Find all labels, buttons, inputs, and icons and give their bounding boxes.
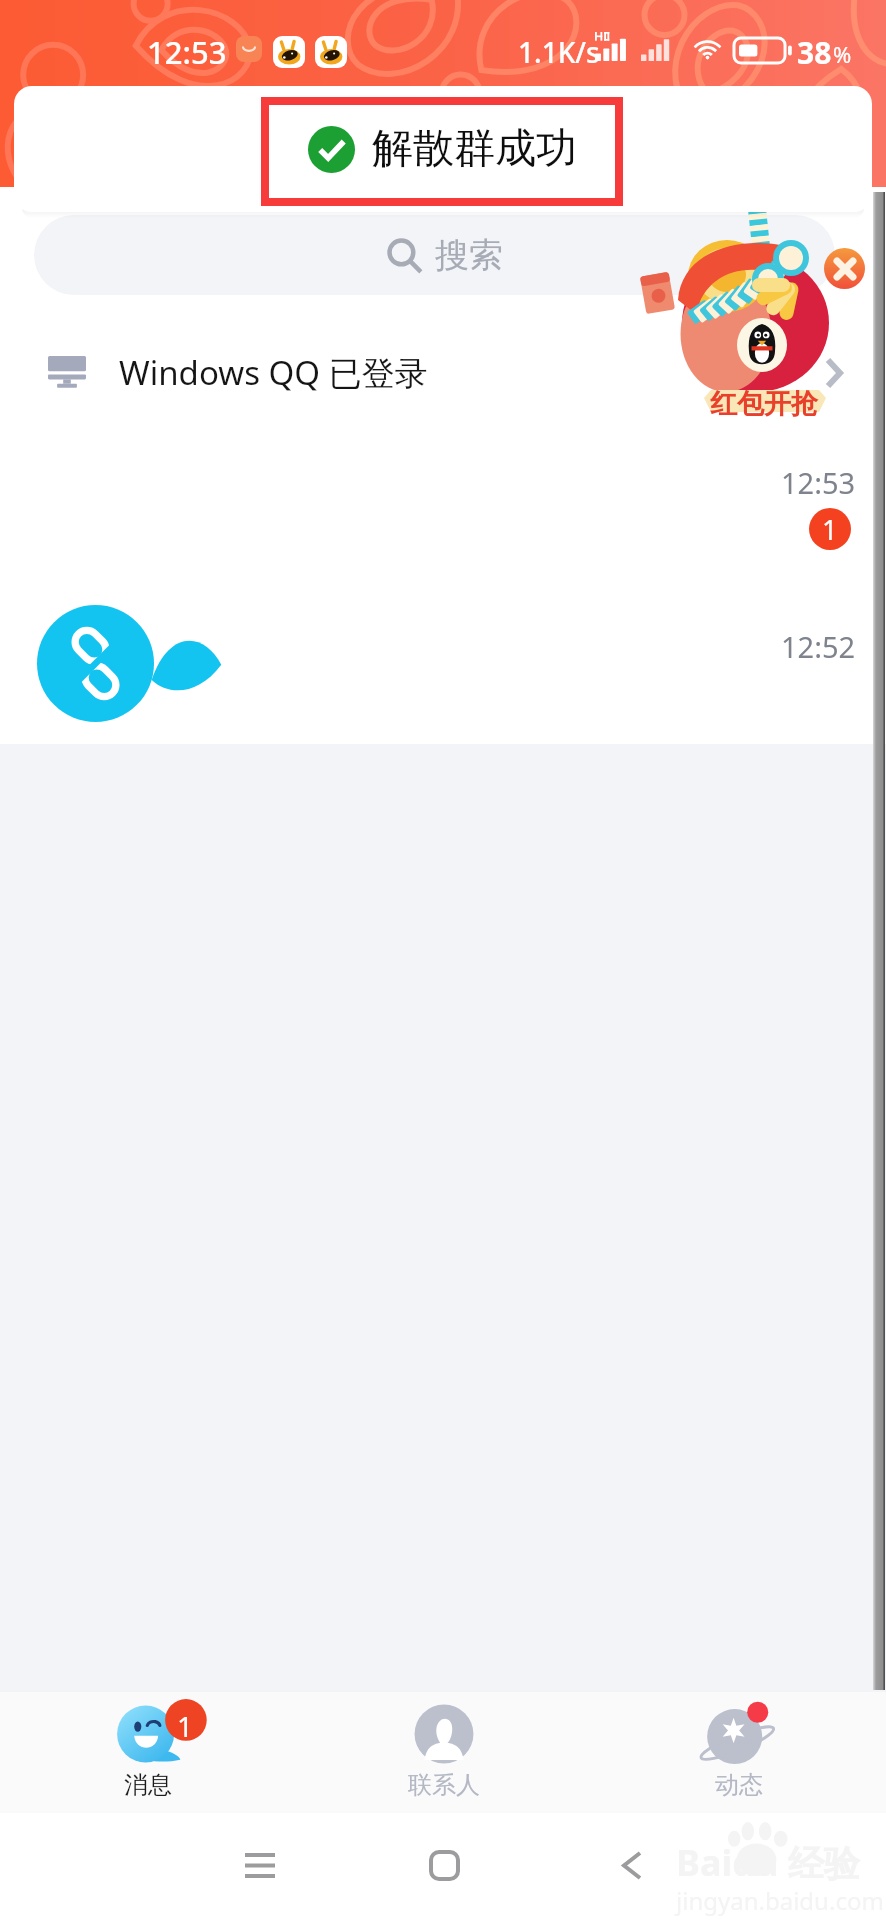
button[interactable]: 联系人 bbox=[296, 1692, 591, 1813]
staticText: 12:53 bbox=[781, 463, 856, 502]
button[interactable]: 12:52 bbox=[0, 599, 886, 744]
staticText: 12:53 bbox=[147, 31, 227, 73]
button[interactable]: Recent apps bbox=[215, 1820, 305, 1910]
staticText: 红包开抢 bbox=[710, 387, 818, 421]
button[interactable]: 动态 bbox=[591, 1692, 886, 1813]
staticText: 1.1K/s bbox=[518, 33, 600, 71]
staticText: jingyan.baidu.com bbox=[676, 1884, 884, 1917]
staticText: 1 bbox=[177, 1707, 194, 1745]
staticText: 动态 bbox=[715, 1770, 763, 1800]
staticText: 解散群成功 bbox=[372, 123, 577, 175]
staticText: 38 bbox=[797, 32, 832, 73]
staticText: % bbox=[833, 39, 852, 69]
button[interactable]: 1 bbox=[0, 1692, 296, 1813]
button[interactable]: 12:53 bbox=[0, 432, 886, 599]
staticText: 12:52 bbox=[781, 627, 856, 666]
button[interactable]: Red packet promotion bbox=[636, 200, 876, 420]
staticText: 1 bbox=[822, 511, 838, 548]
button[interactable]: Back bbox=[587, 1820, 677, 1910]
button[interactable]: 解散群成功 bbox=[14, 86, 872, 212]
staticText: Windows QQ 已登录 bbox=[119, 350, 428, 395]
button[interactable]: Windows QQ 已登录 bbox=[0, 320, 886, 425]
button[interactable]: 搜索 bbox=[34, 215, 835, 295]
staticText: 联系人 bbox=[408, 1770, 480, 1800]
button[interactable]: Close ad bbox=[824, 248, 865, 289]
button[interactable]: Home bbox=[399, 1820, 489, 1910]
staticText: 消息 bbox=[124, 1770, 172, 1800]
staticText: Baidu 经验 bbox=[676, 1838, 860, 1887]
staticText: 搜索 bbox=[435, 234, 503, 277]
